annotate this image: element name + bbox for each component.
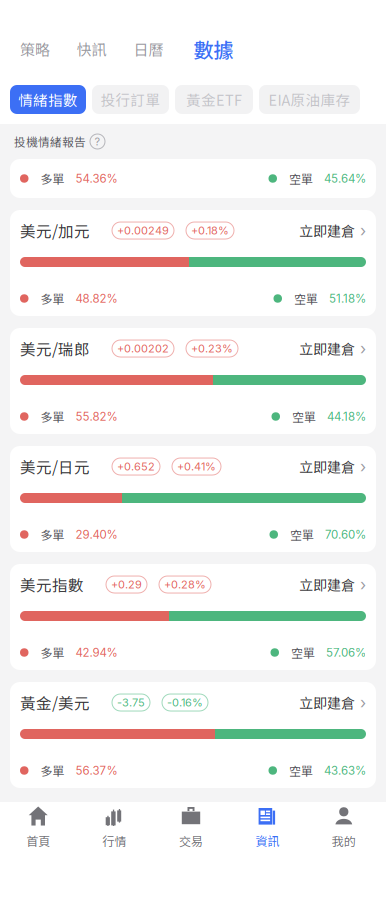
- staticText: 空單: [292, 408, 316, 425]
- button[interactable]: EIA原油庫存: [259, 85, 360, 114]
- staticText: 美元/加元: [20, 219, 90, 242]
- button[interactable]: 快訊: [63, 32, 120, 66]
- button[interactable]: 行情: [76, 798, 153, 859]
- staticText: 45.64%: [324, 171, 366, 185]
- staticText: +0.652: [117, 460, 155, 473]
- staticText: 策略: [20, 38, 50, 60]
- button[interactable]: 策略: [7, 32, 63, 66]
- staticText: 70.60%: [325, 527, 366, 541]
- staticText: 56.37%: [75, 763, 117, 777]
- staticText: 空單: [294, 290, 318, 307]
- staticText: 投機情緒報告: [14, 133, 86, 150]
- staticText: 多單: [40, 762, 64, 779]
- staticText: 立即建倉: [299, 456, 355, 477]
- staticText: 黃金/美元: [20, 691, 90, 714]
- staticText: 多單: [40, 526, 64, 543]
- staticText: -3.75: [117, 696, 145, 709]
- staticText: 48.82%: [75, 291, 117, 305]
- staticText: +0.29: [111, 578, 142, 591]
- staticText: 空單: [291, 644, 315, 661]
- staticText: +0.00202: [117, 342, 169, 355]
- button[interactable]: 資訊: [229, 798, 306, 859]
- staticText: 行情: [103, 832, 127, 849]
- button[interactable]: 情緒指數: [10, 85, 86, 114]
- staticText: 美元/瑞郎: [20, 337, 90, 360]
- staticText: 我的: [332, 832, 356, 849]
- staticText: 多單: [40, 170, 64, 187]
- staticText: 資訊: [255, 832, 279, 849]
- staticText: ›: [360, 575, 366, 594]
- button[interactable]: 黃金ETF: [175, 85, 253, 114]
- staticText: 快訊: [76, 38, 106, 60]
- staticText: +0.28%: [164, 578, 206, 591]
- staticText: 立即建倉: [299, 574, 355, 595]
- staticText: 29.40%: [75, 527, 117, 541]
- staticText: 57.06%: [326, 645, 366, 659]
- button[interactable]: 美元/加元: [10, 210, 376, 316]
- staticText: 42.94%: [75, 645, 117, 659]
- staticText: 交易: [179, 832, 203, 849]
- staticText: ?: [94, 135, 100, 148]
- staticText: ›: [360, 221, 366, 240]
- button[interactable]: 美元/瑞郎: [10, 328, 376, 434]
- staticText: +0.41%: [177, 460, 216, 473]
- staticText: 立即建倉: [299, 220, 355, 241]
- button[interactable]: 日曆: [120, 32, 177, 66]
- button[interactable]: 美元指數: [10, 564, 376, 670]
- button[interactable]: 美元/日元: [10, 446, 376, 552]
- staticText: 多單: [40, 408, 64, 425]
- staticText: 日曆: [133, 38, 163, 60]
- staticText: 空單: [290, 526, 314, 543]
- staticText: +0.18%: [191, 224, 229, 237]
- staticText: 51.18%: [329, 291, 366, 305]
- staticText: 數據: [193, 34, 233, 63]
- staticText: +0.23%: [191, 342, 233, 355]
- staticText: 55.82%: [75, 409, 117, 423]
- staticText: ›: [360, 693, 366, 712]
- staticText: 43.63%: [324, 763, 366, 777]
- staticText: +0.00249: [117, 224, 169, 237]
- staticText: 美元指數: [20, 573, 84, 596]
- staticText: EIA原油庫存: [268, 89, 350, 110]
- staticText: 54.36%: [75, 171, 117, 185]
- button[interactable]: 多單: [10, 159, 376, 198]
- staticText: 情緒指數: [18, 89, 78, 110]
- button[interactable]: 首頁: [0, 798, 76, 859]
- staticText: ›: [360, 339, 366, 358]
- staticText: -0.16%: [167, 696, 203, 709]
- button[interactable]: 數據: [177, 32, 250, 66]
- staticText: 空單: [289, 170, 313, 187]
- button[interactable]: 投行訂單: [92, 85, 169, 114]
- staticText: 首頁: [26, 832, 50, 849]
- staticText: 黃金ETF: [186, 89, 242, 110]
- button[interactable]: 交易: [153, 798, 229, 859]
- staticText: ›: [360, 457, 366, 476]
- button[interactable]: 黃金/美元: [10, 682, 376, 788]
- staticText: 多單: [40, 644, 64, 661]
- button[interactable]: 我的: [306, 798, 382, 859]
- staticText: 空單: [289, 762, 313, 779]
- staticText: 美元/日元: [20, 455, 90, 478]
- staticText: 多單: [40, 290, 64, 307]
- staticText: 立即建倉: [299, 692, 355, 713]
- staticText: 投行訂單: [100, 89, 160, 110]
- staticText: 立即建倉: [299, 338, 355, 359]
- staticText: 44.18%: [327, 409, 366, 423]
